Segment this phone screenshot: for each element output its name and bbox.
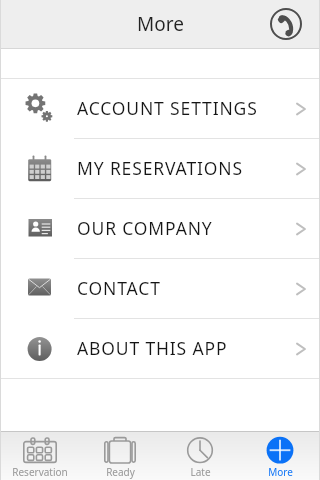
staticText: Late bbox=[190, 465, 211, 479]
button[interactable]: More bbox=[240, 431, 320, 480]
button[interactable]: Reservation bbox=[0, 431, 80, 480]
staticText: MY RESERVATIONS bbox=[77, 156, 243, 180]
staticText: ACCOUNT SETTINGS bbox=[77, 96, 258, 120]
staticText: ABOUT THIS APP bbox=[77, 336, 228, 360]
staticText: More bbox=[268, 465, 293, 479]
button[interactable]: ABOUT THIS APP bbox=[0, 319, 320, 378]
button[interactable]: Ready bbox=[80, 431, 160, 480]
button[interactable]: ACCOUNT SETTINGS bbox=[0, 79, 320, 138]
button[interactable]: OUR COMPANY bbox=[0, 199, 320, 258]
button[interactable]: MY RESERVATIONS bbox=[0, 139, 320, 198]
button[interactable]: Call bbox=[269, 7, 303, 41]
button[interactable]: Late bbox=[160, 431, 240, 480]
staticText: More bbox=[137, 11, 184, 37]
staticText: CONTACT bbox=[77, 276, 161, 300]
staticText: Ready bbox=[106, 465, 135, 479]
button[interactable]: CONTACT bbox=[0, 259, 320, 318]
staticText: Reservation bbox=[12, 465, 68, 479]
staticText: OUR COMPANY bbox=[77, 216, 213, 240]
